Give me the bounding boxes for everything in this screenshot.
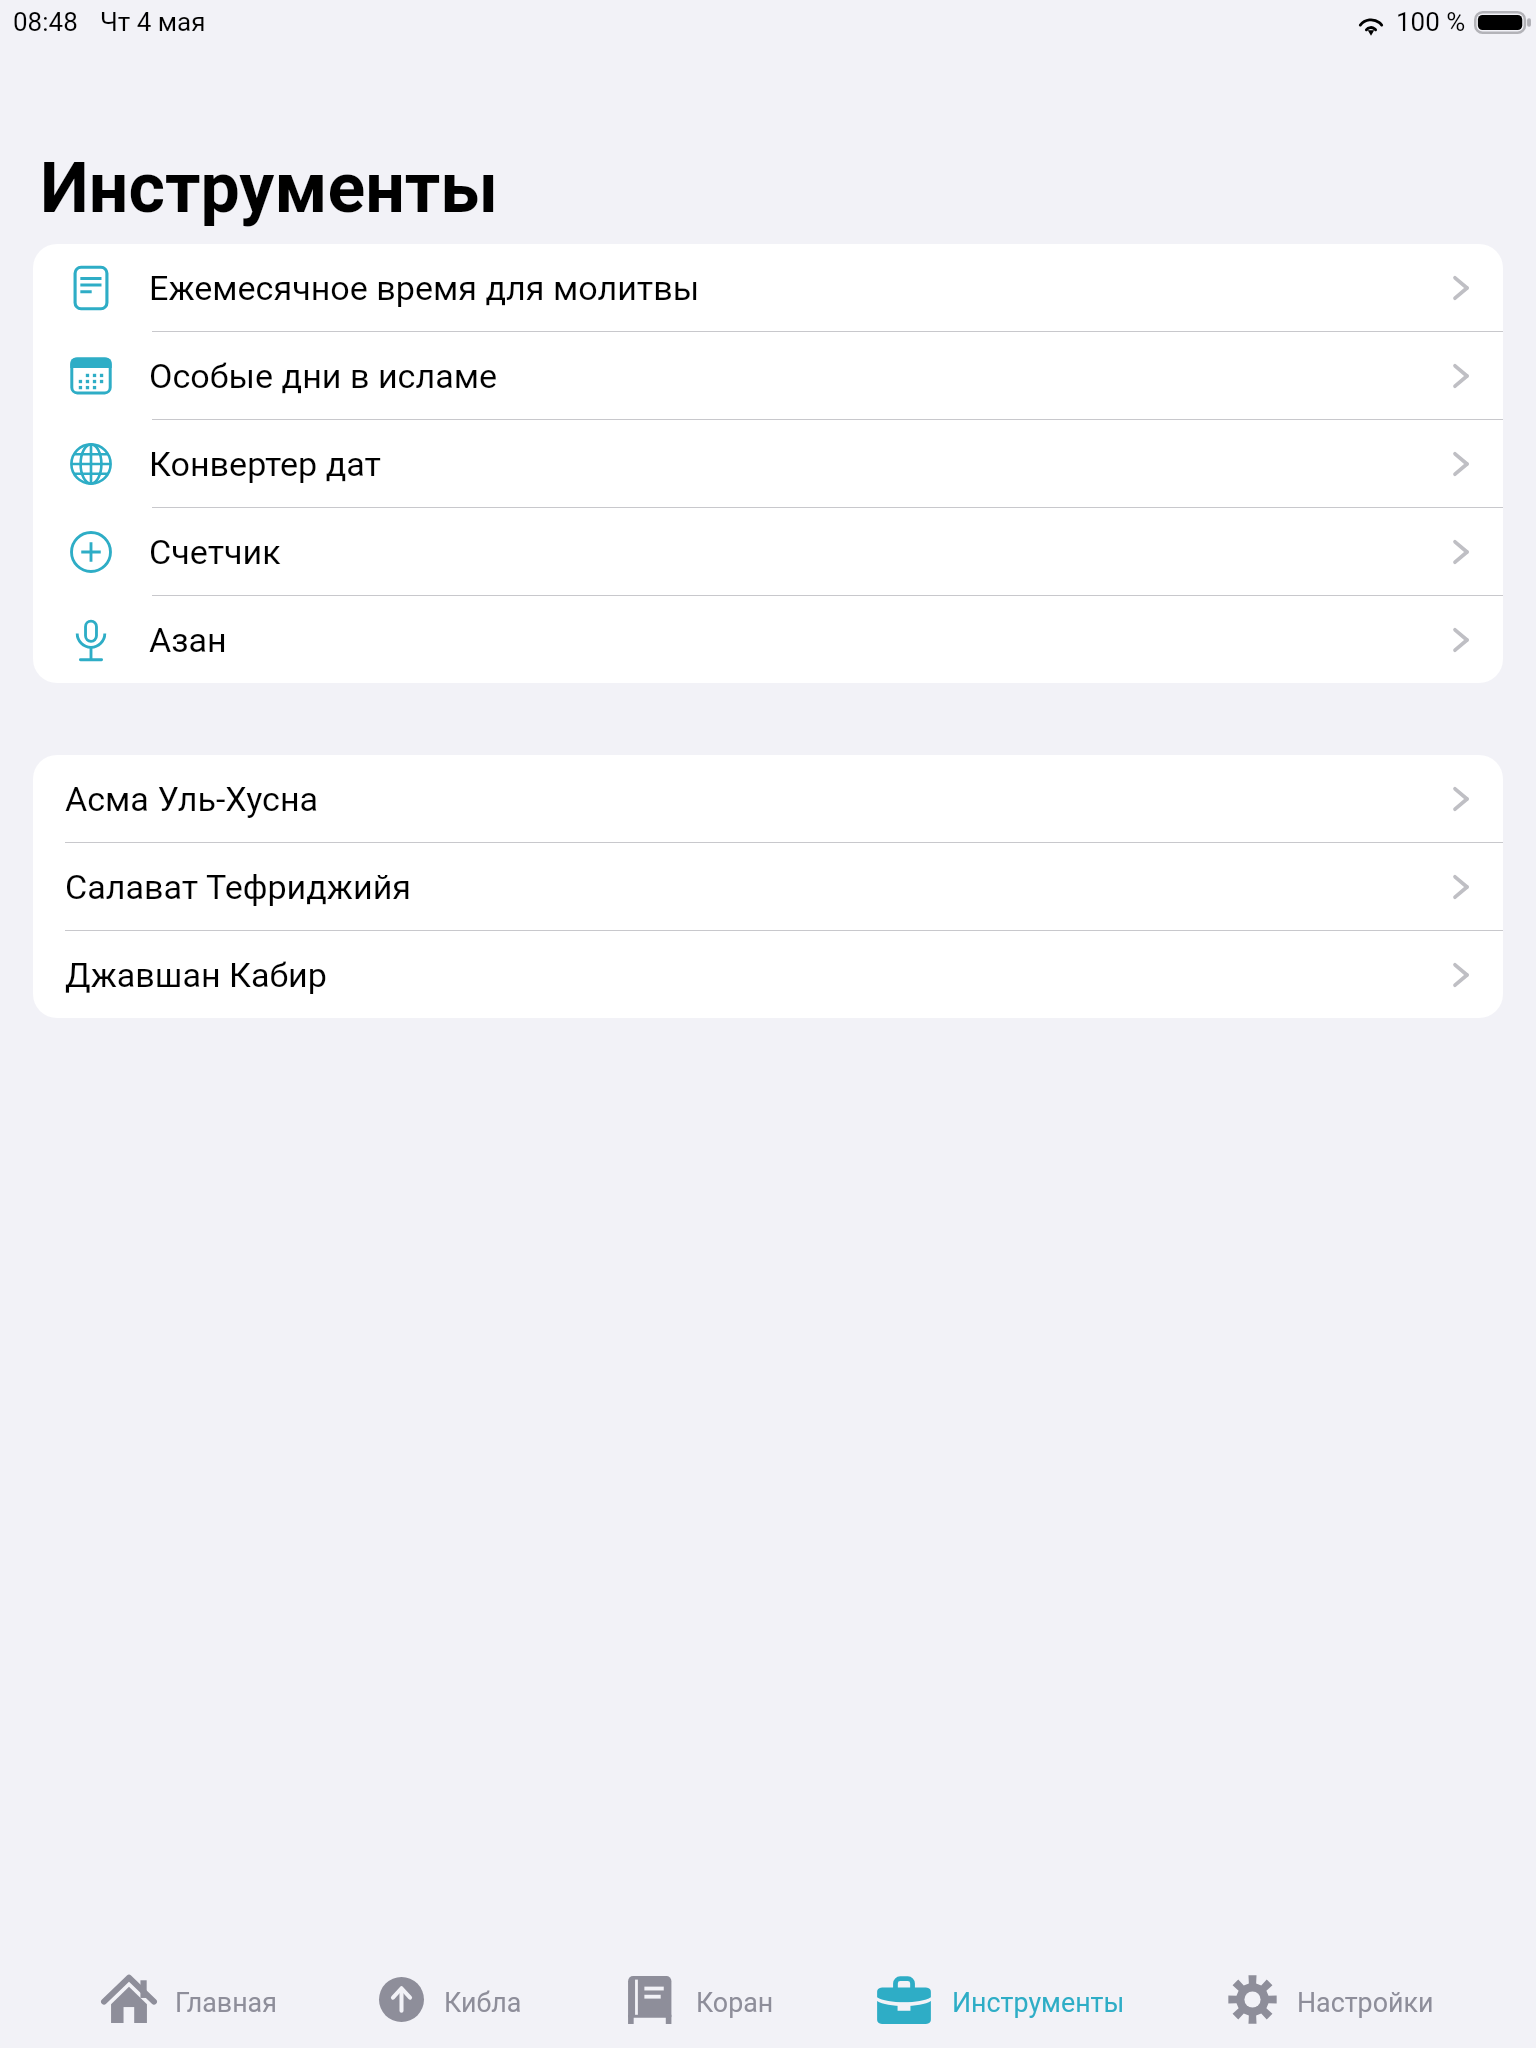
staticText: Салават Тефриджийя [65,867,1449,907]
staticText: Ежемесячное время для молитвы [149,268,1449,308]
button[interactable]: Кибла [379,1958,522,2046]
button[interactable]: Коран [625,1958,774,2046]
other: Battery [1474,11,1531,34]
button[interactable]: Джавшан Кабир [33,931,1503,1018]
button[interactable]: Азан [33,596,1503,683]
staticText: 100 % [1396,7,1466,37]
button[interactable]: Асма Уль-Хусна [33,755,1503,842]
button[interactable]: Главная [103,1958,277,2046]
staticText: Главная [175,1987,277,2018]
staticText: Настройки [1297,1987,1434,2018]
button[interactable]: Особые дни в исламе [33,332,1503,419]
button[interactable]: Настройки [1228,1958,1434,2046]
staticText: Конвертер дат [149,444,1449,484]
staticText: Азан [149,620,1449,660]
other: Коран [625,1974,676,2025]
staticText: 08:48 [13,7,78,37]
other: Главная [103,1973,155,2025]
button[interactable]: Конвертер дат [33,420,1503,507]
other: Настройки [1228,1975,1277,2024]
staticText: Инструменты [40,147,499,229]
other: Wi-Fi [1357,12,1385,33]
button[interactable]: Ежемесячное время для молитвы [33,244,1503,331]
staticText: Джавшан Кабир [65,955,1449,995]
button[interactable]: Счетчик [33,508,1503,595]
staticText: Счетчик [149,532,1449,572]
button[interactable]: Инструменты [876,1958,1125,2046]
staticText: Коран [696,1987,774,2018]
staticText: Асма Уль-Хусна [65,779,1449,819]
other: Инструменты [876,1971,932,2027]
button[interactable]: Салават Тефриджийя [33,843,1503,930]
staticText: Особые дни в исламе [149,356,1449,396]
staticText: Инструменты [952,1987,1125,2018]
staticText: Чт 4 мая [100,7,206,37]
other: Кибла [379,1977,424,2022]
staticText: Кибла [444,1987,522,2018]
